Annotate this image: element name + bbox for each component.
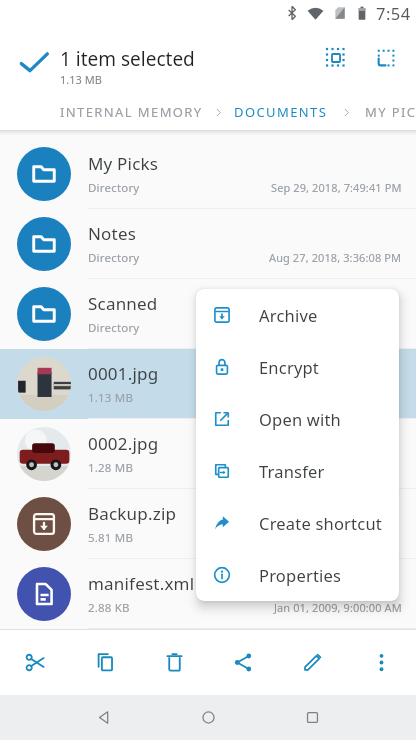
staticText: Scanned [88,292,158,315]
button[interactable] [209,630,278,695]
button[interactable]: Open with [196,393,399,445]
button[interactable]: 0002.jpg [0,419,416,489]
button[interactable] [184,695,232,740]
button[interactable]: Properties [196,549,399,601]
staticText: Jan 01, 2009, 9:00:00 AM [274,600,402,615]
button[interactable]: Scanned [0,279,416,349]
staticText: 2.88 KB [88,600,130,616]
staticText: Aug 27, 2018, 3:36:08 PM [269,250,402,265]
staticText: 0001.jpg [88,362,159,385]
button[interactable] [347,630,416,695]
button[interactable]: Transfer [196,445,399,497]
button[interactable] [278,630,347,695]
staticText: Open with [259,408,342,430]
staticText: Backup.zip [88,502,177,525]
staticText: manifest.xml [88,572,195,595]
staticText: Create shortcut [259,512,382,534]
staticText: Properties [259,564,342,586]
button[interactable]: MY PICTURES [365,103,416,121]
button[interactable]: Archive [196,289,399,341]
button[interactable]: INTERNAL MEMORY [60,103,203,121]
button[interactable]: Notes [0,209,416,279]
staticText: 5.81 MB [88,530,134,546]
staticText: Directory [88,250,140,266]
staticText: Directory [88,320,140,336]
button[interactable] [18,49,50,75]
staticText: 7:54 [376,2,411,24]
staticText: 1.28 MB [88,460,134,476]
staticText: My Picks [88,152,159,175]
button[interactable] [140,630,209,695]
button[interactable]: manifest.xml [0,559,416,629]
staticText: Notes [88,222,137,245]
button[interactable]: Backup.zip [0,489,416,559]
staticText: 0002.jpg [88,432,159,455]
staticText: Transfer [259,460,325,482]
button[interactable]: Create shortcut [196,497,399,549]
button[interactable] [288,695,336,740]
button[interactable]: 0001.jpg [0,349,416,419]
button[interactable] [70,630,140,695]
button[interactable] [0,630,70,695]
button[interactable] [324,46,348,70]
button[interactable]: Encrypt [196,341,399,393]
button[interactable] [374,46,398,70]
staticText: 1.13 MB [88,390,134,406]
staticText: Directory [88,180,140,196]
staticText: 1.13 MB [60,72,102,87]
staticText: 1 item selected [60,46,195,72]
staticText: Archive [259,304,318,326]
staticText: Encrypt [259,356,320,378]
button[interactable] [80,695,128,740]
button[interactable]: My Picks [0,139,416,209]
staticText: Sep 29, 2018, 7:49:41 PM [271,180,402,195]
button[interactable]: DOCUMENTS [234,103,328,121]
